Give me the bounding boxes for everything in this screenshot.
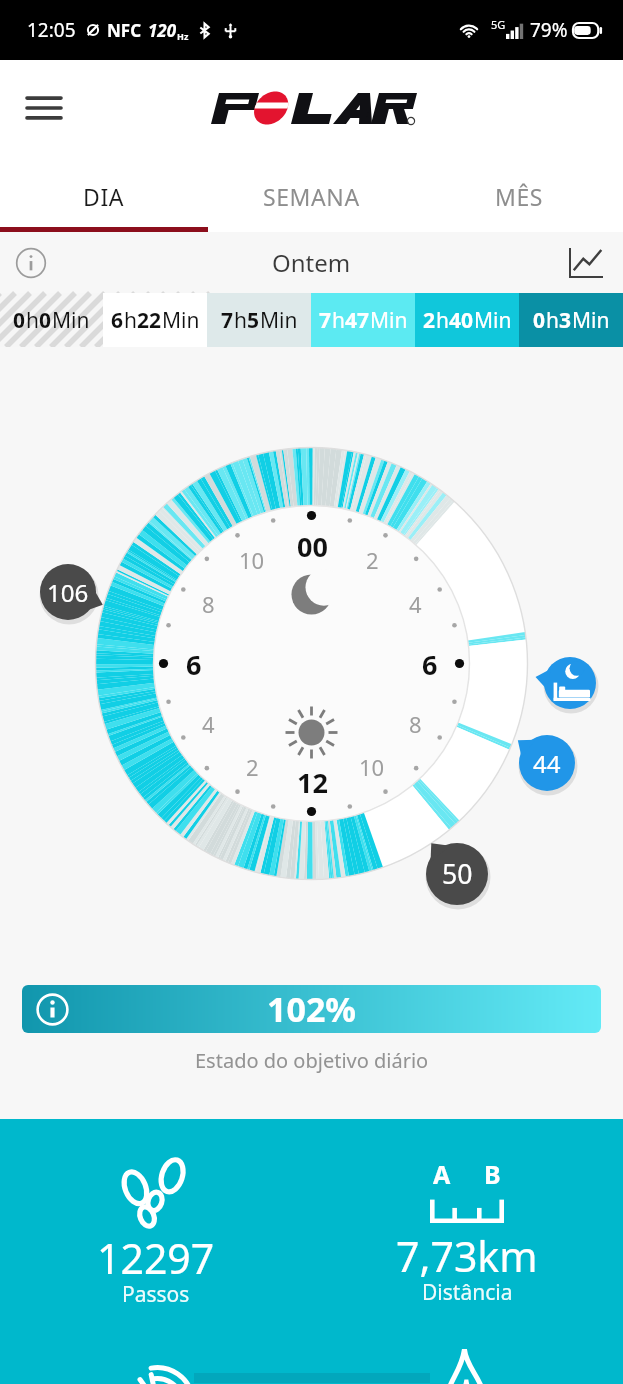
staticText: 102% bbox=[267, 986, 357, 1032]
button[interactable]: Information bbox=[8, 240, 54, 286]
staticText: 00 bbox=[297, 528, 328, 564]
staticText: Distância bbox=[422, 1278, 513, 1307]
staticText: 22 bbox=[137, 306, 162, 335]
staticText: h bbox=[332, 306, 345, 335]
staticText: 0 bbox=[533, 306, 546, 335]
button[interactable]: Calories bbox=[311, 1335, 623, 1384]
staticText: Min bbox=[572, 306, 610, 335]
staticText: h bbox=[546, 306, 559, 335]
staticText: 120 bbox=[148, 19, 177, 42]
button[interactable]: 2 bbox=[415, 293, 519, 347]
button[interactable]: Menu bbox=[14, 78, 74, 138]
staticText: 12 bbox=[297, 764, 328, 800]
button[interactable]: 44 bbox=[505, 721, 589, 805]
staticText: Min bbox=[474, 306, 512, 335]
staticText: Min bbox=[260, 306, 298, 335]
button[interactable]: 50 bbox=[412, 829, 502, 919]
staticText: 5 bbox=[247, 306, 260, 335]
staticText: h bbox=[234, 306, 247, 335]
staticText: Passos bbox=[122, 1280, 190, 1309]
staticText: h bbox=[26, 306, 39, 335]
button[interactable]: SEMANA bbox=[207, 166, 415, 227]
staticText: 50 bbox=[442, 856, 473, 892]
staticText: 6 bbox=[422, 646, 438, 682]
staticText: 7 bbox=[319, 306, 332, 335]
staticText: 10 bbox=[359, 752, 385, 782]
staticText: SEMANA bbox=[263, 181, 360, 212]
staticText: 6 bbox=[186, 646, 202, 682]
staticText: 44 bbox=[533, 747, 561, 780]
staticText: NFC bbox=[107, 19, 142, 42]
staticText: 8 bbox=[409, 709, 422, 739]
staticText: 40 bbox=[449, 306, 474, 335]
staticText: 79% bbox=[530, 17, 568, 43]
staticText: 4 bbox=[409, 589, 422, 619]
staticText: 3 bbox=[559, 306, 572, 335]
button[interactable]: 12297 bbox=[0, 1119, 311, 1315]
button[interactable]: 0 bbox=[519, 293, 623, 347]
staticText: 2 bbox=[246, 752, 259, 782]
staticText: MÊS bbox=[495, 181, 544, 212]
staticText: 7 bbox=[221, 306, 234, 335]
staticText: 4 bbox=[202, 709, 215, 739]
staticText: 0 bbox=[13, 306, 26, 335]
staticText: h bbox=[124, 306, 137, 335]
button[interactable]: 7 bbox=[311, 293, 415, 347]
button[interactable]: MÊS bbox=[415, 166, 623, 227]
staticText: 6 bbox=[111, 306, 124, 335]
staticText: 2 bbox=[423, 306, 436, 335]
staticText: 106 bbox=[47, 576, 89, 609]
button[interactable]: Sleep bbox=[530, 643, 610, 723]
staticText: 8 bbox=[202, 589, 215, 619]
button[interactable]: 102% bbox=[22, 985, 601, 1033]
staticText: 47 bbox=[345, 306, 370, 335]
staticText: 12297 bbox=[97, 1230, 215, 1286]
staticText: B bbox=[484, 1157, 501, 1191]
staticText: Min bbox=[162, 306, 200, 335]
button[interactable]: Activity time bbox=[0, 1335, 311, 1384]
staticText: 7,73km bbox=[396, 1228, 538, 1284]
button[interactable]: A bbox=[311, 1119, 623, 1313]
button[interactable]: DIA bbox=[0, 166, 207, 227]
button[interactable]: 106 bbox=[26, 550, 110, 634]
button[interactable]: Trend chart bbox=[563, 240, 609, 286]
staticText: Hz bbox=[177, 30, 189, 42]
staticText: 10 bbox=[239, 545, 265, 575]
button[interactable]: 0 bbox=[0, 293, 103, 347]
staticText: 2 bbox=[366, 545, 379, 575]
staticText: h bbox=[436, 306, 449, 335]
staticText: Ontem bbox=[272, 246, 351, 279]
button[interactable]: 7 bbox=[207, 293, 311, 347]
staticText: 5G bbox=[491, 17, 506, 32]
staticText: 0 bbox=[39, 306, 52, 335]
staticText: A bbox=[433, 1157, 451, 1191]
staticText: Min bbox=[52, 306, 90, 335]
staticText: Estado do objetivo diário bbox=[195, 1047, 429, 1074]
staticText: Min bbox=[370, 306, 408, 335]
staticText: 12:05 bbox=[27, 17, 76, 43]
staticText: DIA bbox=[83, 181, 125, 212]
button[interactable]: 6 bbox=[103, 293, 207, 347]
